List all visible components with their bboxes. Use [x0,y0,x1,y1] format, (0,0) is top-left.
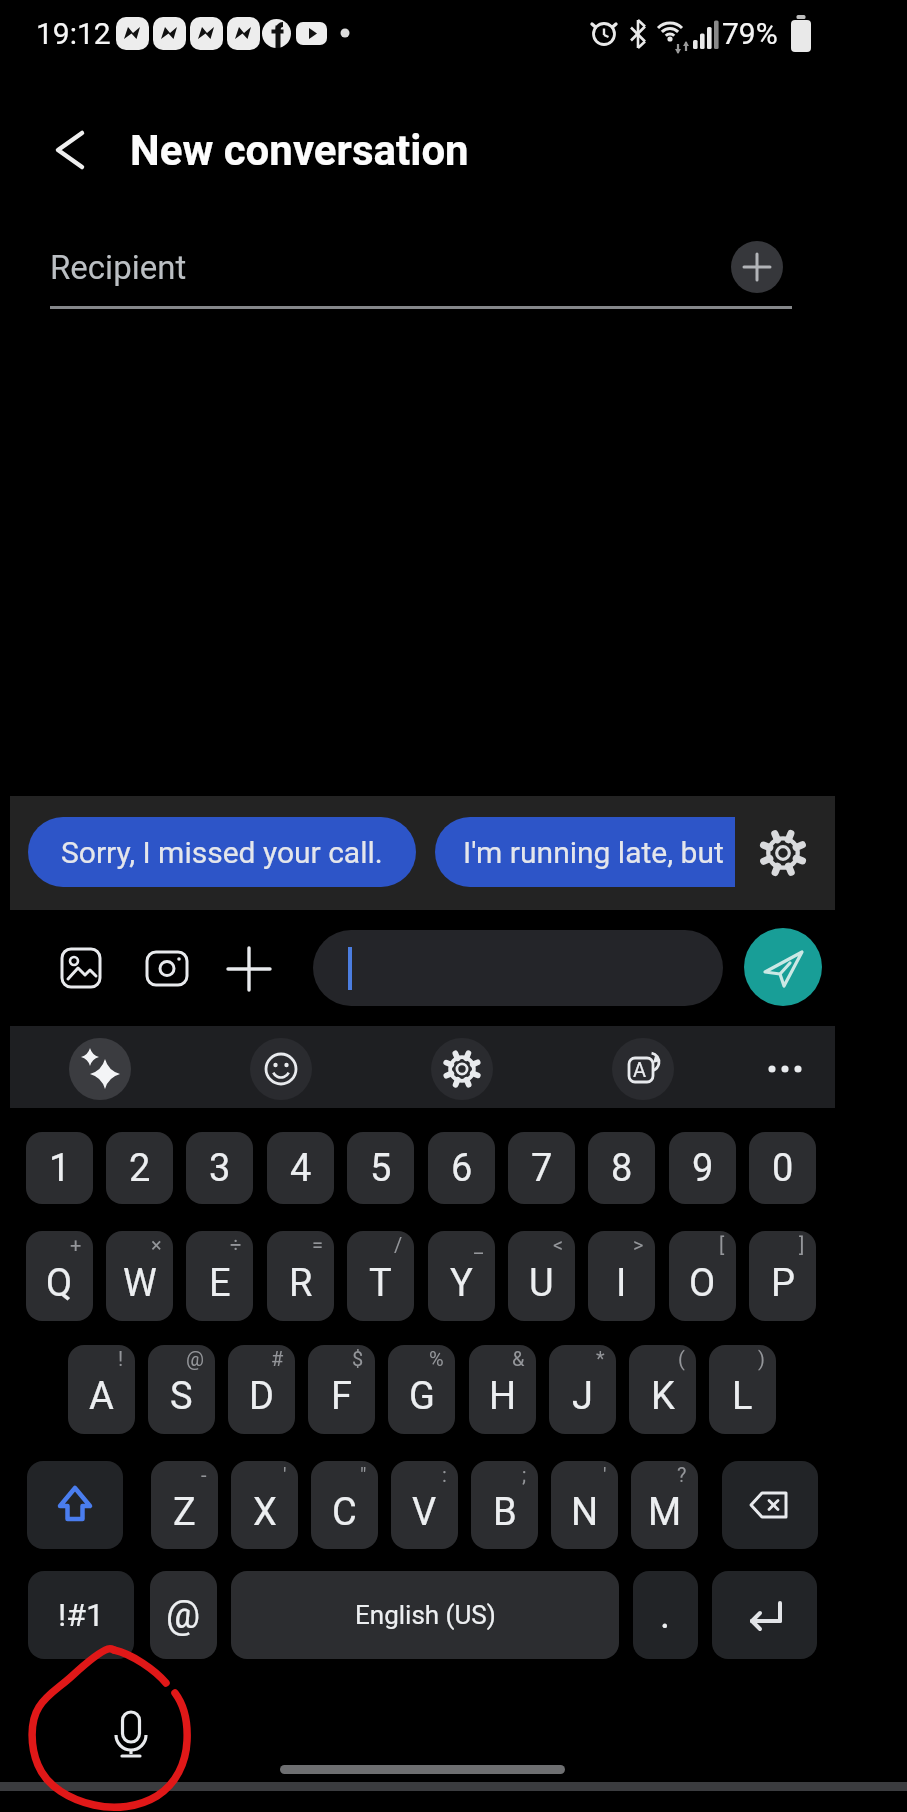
button[interactable]: 8 [588,1132,655,1204]
button[interactable] [744,928,822,1006]
staticText: Sorry, I missed your call. [61,835,383,870]
button[interactable]: 1 [26,1132,93,1204]
button[interactable]: * [549,1345,616,1434]
button[interactable]: % [388,1345,455,1434]
button[interactable]: " [311,1461,378,1549]
staticText: ? [677,1463,687,1486]
button[interactable]: A [612,1038,674,1100]
staticText: ' [603,1463,607,1486]
button[interactable]: !#1 [28,1571,134,1659]
button[interactable]: & [469,1345,536,1434]
button[interactable] [226,946,272,992]
button[interactable]: _ [428,1231,495,1321]
button[interactable]: 3 [186,1132,253,1204]
button[interactable]: 7 [508,1132,575,1204]
staticText: % [429,1347,444,1370]
staticText: V [412,1490,437,1535]
staticText: K [651,1374,675,1419]
button[interactable]: @ [148,1345,215,1434]
button[interactable]: ) [709,1345,776,1434]
button[interactable]: # [228,1345,295,1434]
button[interactable]: + [26,1231,93,1321]
button[interactable] [40,124,100,176]
button[interactable]: / [347,1231,414,1321]
button[interactable]: Sorry, I missed your call. [28,817,416,887]
button[interactable]: < [508,1231,575,1321]
staticText: J [572,1374,593,1419]
staticText: Recipient [50,248,187,287]
staticText: ' [283,1463,287,1486]
staticText: O [689,1261,716,1306]
button[interactable]: Recipient [50,235,795,299]
button[interactable] [722,1461,818,1549]
staticText: ] [799,1233,805,1256]
button[interactable]: ] [749,1231,816,1321]
button[interactable]: - [151,1461,218,1549]
button[interactable] [69,1038,131,1100]
button[interactable] [431,1038,493,1100]
staticText: " [360,1463,367,1486]
staticText: 4 [290,1146,312,1191]
staticText: M [648,1490,682,1535]
staticText: 9 [692,1146,714,1191]
button[interactable]: × [106,1231,173,1321]
button[interactable]: ? [631,1461,698,1549]
button[interactable] [27,1461,123,1549]
button[interactable]: 6 [428,1132,495,1204]
button[interactable]: 0 [749,1132,816,1204]
staticText: A [89,1374,114,1419]
staticText: ÷ [230,1233,242,1256]
button[interactable] [144,947,190,989]
button[interactable]: I'm running late, but [435,817,735,887]
button[interactable]: : [391,1461,458,1549]
button[interactable]: ! [68,1345,135,1434]
staticText: 6 [451,1146,473,1191]
button[interactable]: ; [471,1461,538,1549]
staticText: I'm running late, but [463,835,724,870]
button[interactable]: ( [629,1345,696,1434]
button[interactable]: 2 [106,1132,173,1204]
staticText: 1 [49,1146,71,1191]
staticText: 5 [370,1146,392,1191]
staticText: × [151,1233,162,1256]
button[interactable]: $ [308,1345,375,1434]
button[interactable] [101,1705,161,1765]
button[interactable]: ' [231,1461,298,1549]
button[interactable] [313,930,723,1006]
button[interactable]: English (US) [231,1571,619,1659]
button[interactable]: @ [150,1571,217,1659]
staticText: I [616,1261,627,1306]
staticText: F [331,1374,353,1419]
button[interactable]: > [588,1231,655,1321]
staticText: ( [678,1347,685,1370]
staticText: H [489,1374,517,1419]
staticText: * [596,1347,605,1370]
staticText: 8 [611,1146,633,1191]
staticText: Q [46,1261,73,1306]
button[interactable] [250,1038,312,1100]
button[interactable]: 4 [267,1132,334,1204]
button[interactable] [756,826,810,880]
button[interactable]: ' [551,1461,618,1549]
staticText: R [289,1261,313,1306]
staticText: 3 [209,1146,231,1191]
button[interactable]: ÷ [186,1231,253,1321]
button[interactable]: 9 [669,1132,736,1204]
staticText: 0 [772,1146,794,1191]
button[interactable]: [ [669,1231,736,1321]
button[interactable]: . [633,1571,698,1659]
staticText: Y [450,1261,473,1306]
staticText: T [369,1261,392,1306]
button[interactable] [731,241,783,293]
button[interactable] [58,945,104,991]
button[interactable]: 5 [347,1132,414,1204]
staticText: . [660,1593,671,1638]
staticText: A [633,1058,647,1081]
staticText: 2 [129,1146,151,1191]
button[interactable]: = [267,1231,334,1321]
staticText: # [271,1347,284,1370]
button[interactable] [712,1571,817,1659]
button[interactable] [754,1038,816,1100]
staticText: G [409,1374,435,1419]
staticText: ; [522,1463,527,1486]
